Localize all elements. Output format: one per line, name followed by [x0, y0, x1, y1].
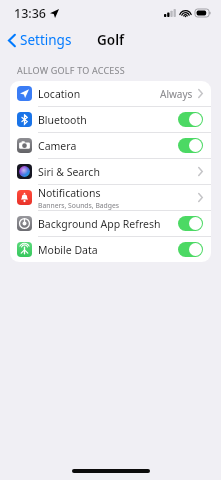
- button[interactable]: Mobile Data toggle, on: [178, 242, 203, 257]
- button[interactable]: Camera: [10, 133, 211, 159]
- staticText: Camera: [38, 139, 77, 153]
- button[interactable]: Settings: [0, 27, 80, 53]
- button[interactable]: Notifications: [10, 185, 211, 211]
- staticText: Background App Refresh: [38, 217, 161, 231]
- staticText: Notifications: [38, 186, 101, 200]
- staticText: Location: [38, 87, 81, 101]
- staticText: Bluetooth: [38, 113, 87, 127]
- button[interactable]: Siri & Search: [10, 159, 211, 185]
- button[interactable]: Camera toggle, on: [178, 138, 203, 153]
- staticText: Always: [160, 87, 193, 101]
- staticText: ALLOW GOLF TO ACCESS: [17, 64, 125, 76]
- staticText: Siri & Search: [38, 165, 100, 179]
- staticText: Banners, Sounds, Badges: [38, 201, 120, 210]
- button[interactable]: Background App Refresh: [10, 211, 211, 237]
- button[interactable]: Background App Refresh toggle, on: [178, 216, 203, 231]
- staticText: Settings: [20, 31, 72, 49]
- staticText: 13:36: [14, 5, 47, 22]
- button[interactable]: Location: [10, 81, 211, 107]
- button[interactable]: Bluetooth toggle, on: [178, 112, 203, 127]
- staticText: Golf: [97, 31, 124, 49]
- button[interactable]: Bluetooth: [10, 107, 211, 133]
- button[interactable]: Mobile Data: [10, 237, 211, 262]
- staticText: Mobile Data: [38, 243, 98, 257]
